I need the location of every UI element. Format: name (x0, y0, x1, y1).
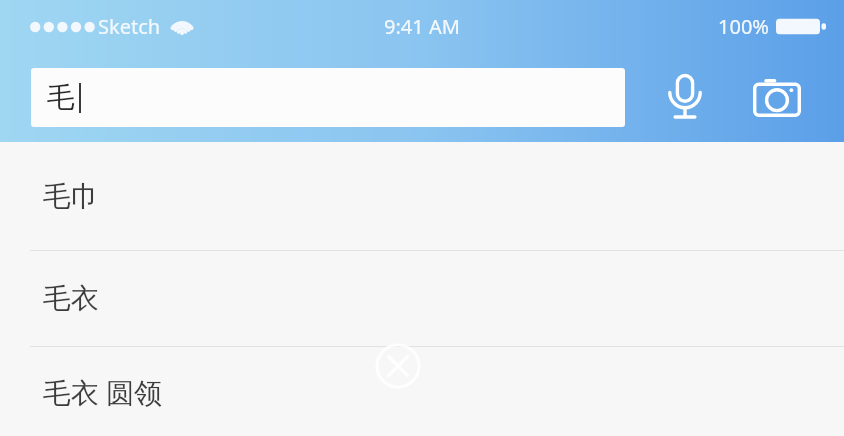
button[interactable]: Clear (375, 343, 421, 389)
staticText: 毛衣 圆领 (43, 373, 163, 411)
button[interactable]: 毛衣 (0, 251, 844, 346)
button[interactable]: 毛衣 圆领 (0, 347, 844, 436)
staticText: 毛巾 (43, 179, 99, 214)
button[interactable]: Voice search (654, 66, 716, 128)
button[interactable]: 毛巾 (0, 142, 844, 250)
staticText: Sketch (98, 13, 161, 40)
staticText: 毛衣 (43, 281, 99, 316)
staticText: 9:41 AM (384, 13, 460, 40)
button[interactable]: 毛 (31, 68, 625, 127)
staticText: 100% (718, 13, 769, 40)
button[interactable]: Search by image (746, 66, 808, 128)
staticText: 毛 (47, 80, 75, 115)
